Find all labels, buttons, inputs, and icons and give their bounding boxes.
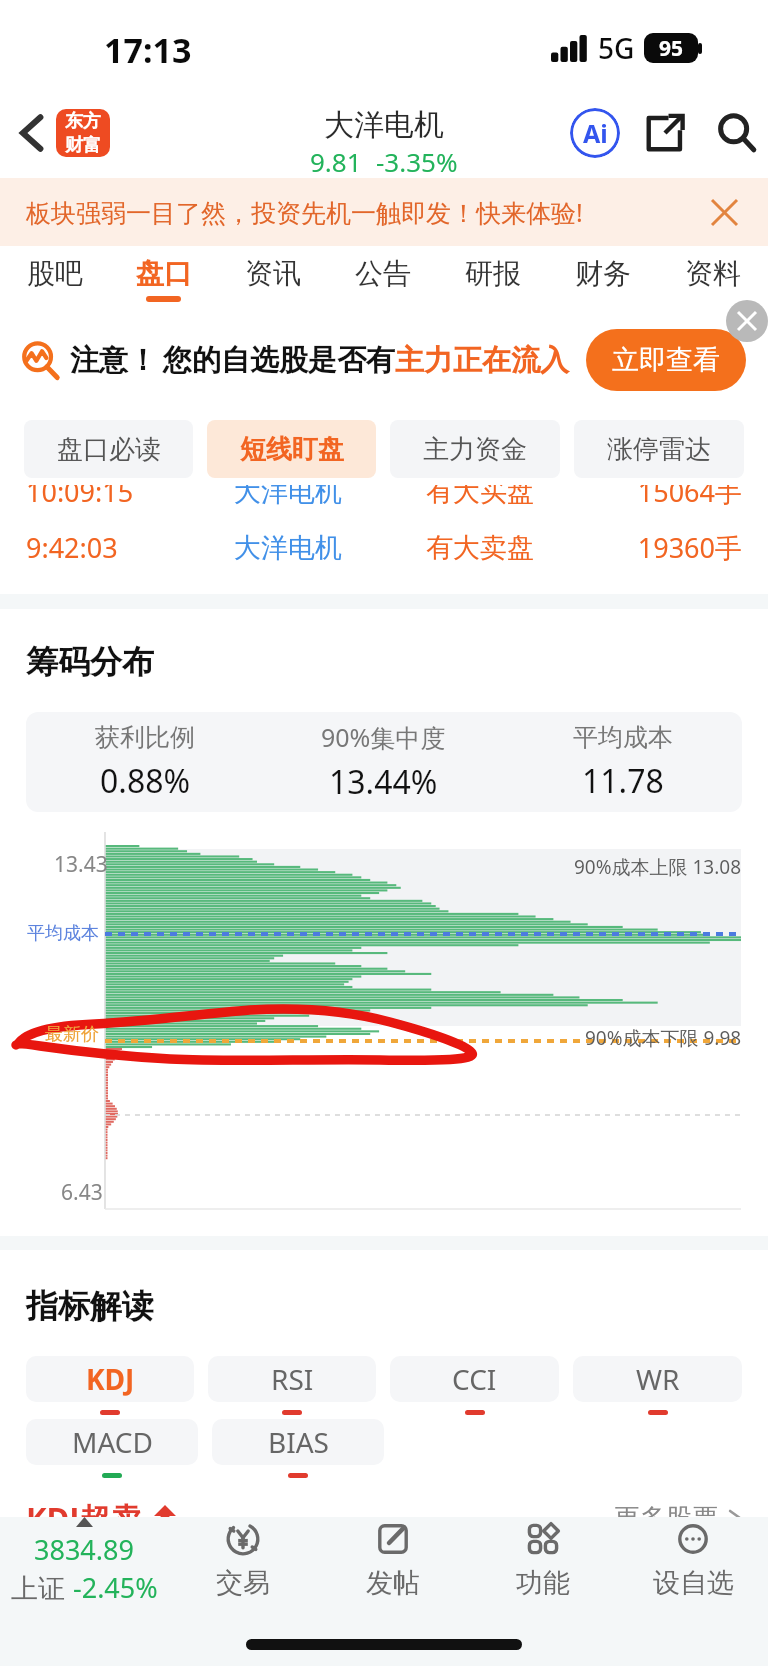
button[interactable]: RSI [208,1356,376,1402]
staticText: RSI [271,1360,314,1398]
staticText: 设自选 [653,1566,734,1600]
staticText: 平均成本 [27,922,99,945]
staticText: 财富 [65,134,101,157]
staticText: 5G [598,29,635,67]
button[interactable]: East Money [56,109,110,157]
staticText: 短线盯盘 [240,433,344,466]
staticText: 筹码分布 [26,642,154,682]
staticText: 0.88% [100,759,191,803]
button[interactable]: 立即查看 [586,329,746,391]
button[interactable]: Close banner [702,190,746,234]
staticText: 平均成本 [573,722,673,753]
staticText: -2.45% [73,1569,158,1601]
staticText: 3834.89 [34,1531,134,1568]
staticText: 95 [659,34,684,63]
button[interactable]: 资料 [658,246,768,312]
button[interactable]: 10:09:15 [0,485,768,512]
staticText: 最新价 [45,1023,99,1046]
staticText: KDJ超卖 [26,1497,142,1539]
button[interactable]: 主力资金 [390,420,560,478]
staticText: 有大卖盘 [384,531,576,565]
staticText: 交易 [216,1566,270,1600]
staticText: 指标解读 [26,1286,154,1326]
button[interactable]: 盘口必读 [24,420,193,478]
staticText: WR [636,1360,680,1398]
button[interactable]: CCI [390,1356,559,1402]
button[interactable]: 涨停雷达 [574,420,744,478]
staticText: 发帖 [366,1566,420,1600]
staticText: 上证 [11,1569,73,1601]
button[interactable]: 功能 [468,1519,618,1600]
staticText: 功能 [516,1566,570,1600]
button[interactable]: 短线盯盘 [207,420,376,478]
staticText: 19360手 [576,529,742,566]
staticText: 11.78 [582,759,664,803]
button[interactable]: AI assistant [565,103,625,163]
staticText: 获利比例 [95,722,195,753]
staticText: 大洋电机 [192,485,384,509]
staticText: 13.43 [54,850,108,879]
button[interactable]: 资讯 [218,246,328,312]
staticText: 更多股票 [614,1502,718,1535]
staticText: -3.35% [376,144,458,179]
button[interactable]: 财务 [548,246,658,312]
staticText: 大洋电机 [192,531,384,565]
staticText: 资讯 [245,256,301,291]
staticText: CCI [452,1360,497,1398]
button[interactable]: 公告 [328,246,438,312]
staticText: 10:09:15 [26,485,192,510]
staticText: 盘口 [136,256,192,291]
staticText: 90%成本上限 13.08 [574,854,742,880]
staticText: 公告 [355,256,411,291]
staticText: 东方 [65,110,101,133]
staticText: 90%集中度 [321,720,446,754]
staticText: 股吧 [27,256,83,291]
button[interactable]: Back [6,107,58,159]
staticText: 90%成本下限 9.98 [585,1025,742,1051]
staticText: 板块强弱一目了然，投资先机一触即发！快来体验! [26,195,583,229]
staticText: 大洋电机 [324,106,444,144]
staticText: 盘口必读 [57,433,161,466]
staticText: 13.44% [329,760,438,804]
button[interactable]: 9:42:03 [0,520,768,575]
staticText: 您的自选股是否有 [163,342,395,379]
button[interactable]: BIAS [212,1419,384,1465]
staticText: 有大买盘 [384,485,576,509]
staticText: 17:13 [104,27,192,73]
staticText: 6.43 [61,1178,103,1207]
button[interactable]: KDJ [26,1356,194,1402]
button[interactable]: MACD [26,1419,198,1465]
button[interactable]: 研报 [438,246,548,312]
staticText: 主力资金 [423,433,527,466]
staticText: 研报 [465,256,521,291]
staticText: Ai [583,116,608,150]
staticText: 9:42:03 [26,529,192,566]
button[interactable]: 发帖 [318,1519,468,1600]
staticText: MACD [72,1423,153,1461]
staticText: 注意！ [70,342,157,379]
staticText: 立即查看 [612,343,720,377]
button[interactable]: Search [708,104,766,162]
button[interactable]: 股吧 [0,246,109,312]
staticText: 9.81 [310,144,362,179]
button[interactable]: 盘口 [109,246,218,312]
button[interactable]: Close ad [726,300,768,342]
staticText: 涨停雷达 [607,433,711,466]
button[interactable]: 交易 [168,1519,318,1600]
staticText: 主力正在流入 [395,342,569,379]
button[interactable]: Share [636,104,694,162]
staticText: 财务 [575,256,631,291]
staticText: 15064手 [576,485,742,510]
button[interactable]: 3834.89 [0,1517,168,1601]
staticText: KDJ [86,1360,135,1398]
button[interactable]: 设自选 [618,1519,768,1600]
staticText: BIAS [268,1423,329,1461]
button[interactable]: WR [573,1356,742,1402]
staticText: 资料 [685,256,741,291]
